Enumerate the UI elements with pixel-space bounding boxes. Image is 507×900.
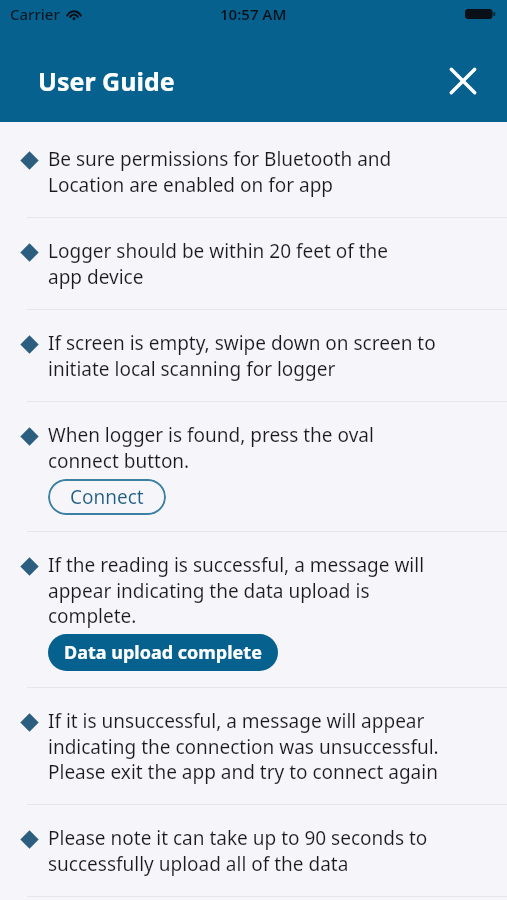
button[interactable]: Please note it can take up to 90 seconds… xyxy=(0,805,507,896)
staticText: If the reading is successful, a message … xyxy=(48,552,425,628)
staticText: User Guide xyxy=(38,64,175,98)
staticText: If screen is empty, swipe down on screen… xyxy=(48,330,436,381)
staticText: If it is unsuccessful, a message will ap… xyxy=(48,708,439,784)
staticText: Please note it can take up to 90 seconds… xyxy=(48,825,428,876)
staticText: Data upload complete xyxy=(64,640,262,665)
button[interactable]: Data upload complete xyxy=(48,634,278,671)
button[interactable]: Close xyxy=(441,59,485,103)
button[interactable]: If it is unsuccessful, a message will ap… xyxy=(0,688,507,804)
staticText: Logger should be within 20 feet of the a… xyxy=(48,238,389,289)
button[interactable]: If the reading is successful, a message … xyxy=(0,532,507,687)
button[interactable]: Be sure permissions for Bluetooth and Lo… xyxy=(0,122,507,217)
button[interactable]: Logger should be within 20 feet of the a… xyxy=(0,218,507,309)
staticText: Be sure permissions for Bluetooth and Lo… xyxy=(48,146,392,197)
button[interactable]: When logger is found, press the oval con… xyxy=(0,402,507,531)
staticText: 10:57 AM xyxy=(220,4,287,24)
staticText: Carrier xyxy=(10,4,60,24)
staticText: When logger is found, press the oval con… xyxy=(48,422,374,473)
staticText: Connect xyxy=(70,484,144,510)
button[interactable]: Connect xyxy=(48,479,166,515)
button[interactable]: If screen is empty, swipe down on screen… xyxy=(0,310,507,401)
